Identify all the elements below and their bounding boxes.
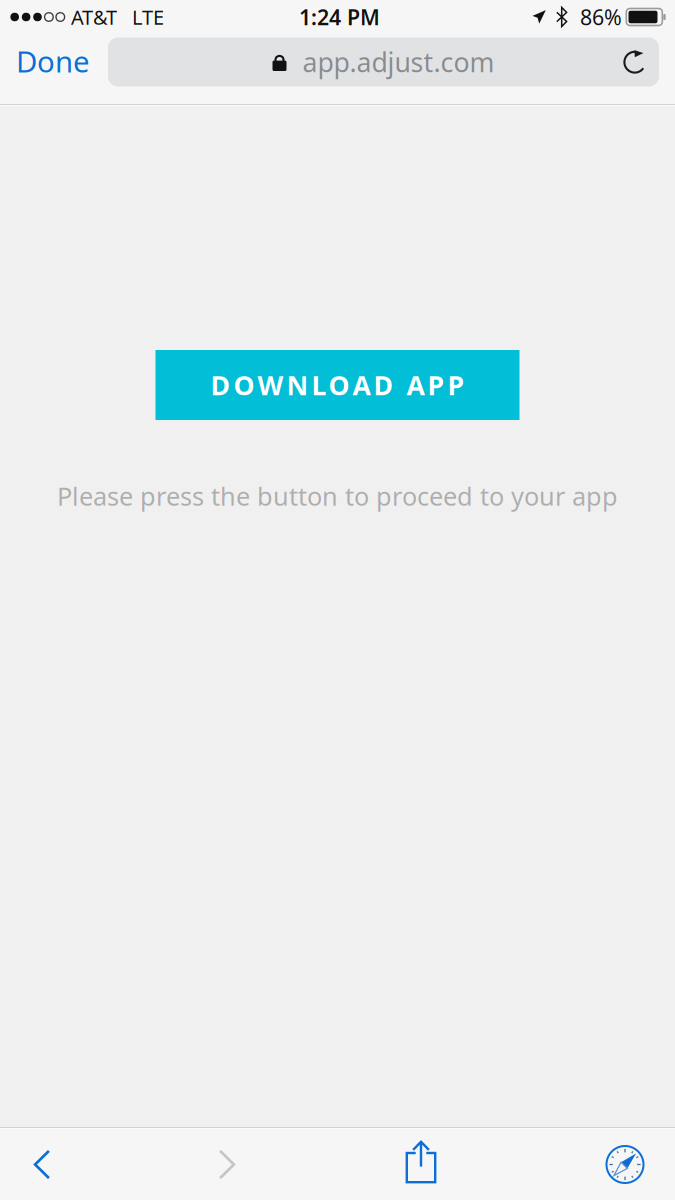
staticText: Please press the button to proceed to yo… [57,479,618,513]
button[interactable]: app.adjust.com [108,38,659,87]
button[interactable]: Back [0,1129,84,1200]
button[interactable]: Forward [185,1129,269,1200]
staticText: app.adjust.com [302,44,494,80]
staticText: Done [16,41,90,80]
button[interactable]: Open in Safari [583,1129,667,1200]
staticText: 86% [580,3,622,31]
button[interactable]: DOWNLOAD APP [155,350,519,420]
staticText: LTE [132,4,164,30]
staticText: AT&T [71,4,117,30]
staticText: DOWNLOAD APP [210,367,464,403]
button[interactable]: Done [0,34,108,91]
button[interactable]: Share [379,1129,463,1200]
staticText: 1:24 PM [299,3,380,31]
